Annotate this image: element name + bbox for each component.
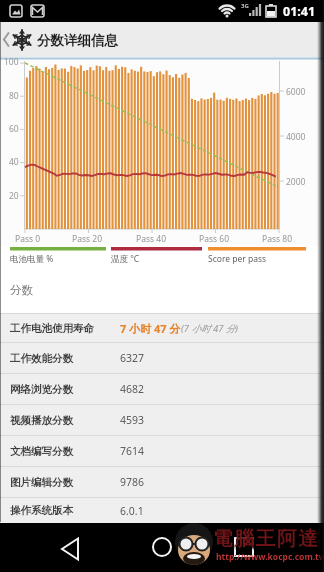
staticText: 4593 bbox=[120, 413, 145, 427]
button[interactable]: 图片编辑分数 bbox=[0, 467, 324, 497]
staticText: 7614 bbox=[120, 444, 145, 458]
staticText: 温度 °C bbox=[111, 253, 140, 265]
button[interactable]: 分数详细信息 bbox=[0, 22, 324, 57]
staticText: 6000 bbox=[286, 86, 306, 98]
staticText: (7 小时 47 分) bbox=[181, 322, 239, 335]
staticText: Pass 80 bbox=[262, 233, 292, 245]
staticText: 電腦王阿達 bbox=[213, 526, 320, 551]
button[interactable]: 操作系统版本 bbox=[0, 498, 324, 523]
staticText: 20 bbox=[9, 190, 19, 202]
staticText: 文档编写分数 bbox=[10, 445, 73, 458]
staticText: 2000 bbox=[286, 176, 306, 188]
staticText: 80 bbox=[9, 90, 19, 102]
button[interactable]: 工作电池使用寿命 bbox=[0, 314, 324, 342]
staticText: 分数详细信息 bbox=[37, 32, 118, 49]
staticText: 图片编辑分数 bbox=[10, 476, 73, 489]
staticText: 工作电池使用寿命 bbox=[10, 322, 94, 335]
staticText: 9786 bbox=[120, 475, 145, 489]
staticText: 01:41 bbox=[283, 3, 316, 20]
staticText: Pass 20 bbox=[72, 233, 102, 245]
staticText: 视频播放分数 bbox=[10, 414, 73, 427]
staticText: 6.0.1 bbox=[120, 504, 144, 518]
button[interactable]: 视频播放分数 bbox=[0, 405, 324, 435]
staticText: Pass 60 bbox=[199, 233, 229, 245]
button[interactable] bbox=[230, 533, 258, 561]
button[interactable] bbox=[56, 535, 84, 563]
staticText: http://www.kocpc.com.tw bbox=[216, 551, 324, 563]
button[interactable]: 网络浏览分数 bbox=[0, 374, 324, 404]
staticText: Score per pass bbox=[208, 253, 267, 265]
staticText: Pass 0 bbox=[15, 233, 41, 245]
button[interactable]: 文档编写分数 bbox=[0, 436, 324, 466]
button[interactable]: 工作效能分数 bbox=[0, 343, 324, 373]
staticText: 网络浏览分数 bbox=[10, 383, 73, 396]
staticText: Pass 40 bbox=[136, 233, 166, 245]
staticText: 100 bbox=[4, 56, 19, 68]
staticText: 7 小时 47 分 bbox=[120, 321, 181, 336]
staticText: 40 bbox=[9, 156, 19, 168]
staticText: 4682 bbox=[120, 382, 145, 396]
staticText: 工作效能分数 bbox=[10, 352, 73, 365]
staticText: 分数 bbox=[10, 283, 33, 297]
button[interactable] bbox=[148, 533, 176, 561]
staticText: 电池电量 % bbox=[10, 253, 54, 265]
staticText: 操作系统版本 bbox=[10, 504, 73, 517]
staticText: 4000 bbox=[286, 131, 306, 143]
staticText: 60 bbox=[9, 123, 19, 135]
staticText: 6327 bbox=[120, 351, 145, 365]
staticText: 3G bbox=[241, 2, 249, 10]
